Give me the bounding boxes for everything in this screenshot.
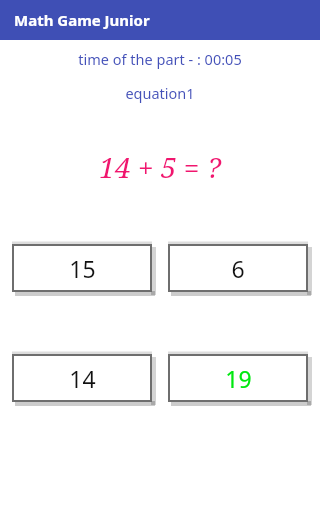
button[interactable]: 6: [168, 244, 308, 292]
staticText: time of the part - : 00:05: [0, 49, 320, 69]
button[interactable]: 19: [168, 354, 308, 402]
staticText: 14: [69, 363, 96, 394]
staticText: 14 + 5 = ?: [0, 148, 320, 186]
staticText: 6: [231, 253, 245, 284]
button[interactable]: 15: [12, 244, 152, 292]
staticText: 19: [225, 363, 252, 394]
staticText: 15: [69, 253, 96, 284]
button[interactable]: 14: [12, 354, 152, 402]
staticText: equation1: [0, 83, 320, 103]
staticText: Math Game Junior: [14, 10, 150, 30]
